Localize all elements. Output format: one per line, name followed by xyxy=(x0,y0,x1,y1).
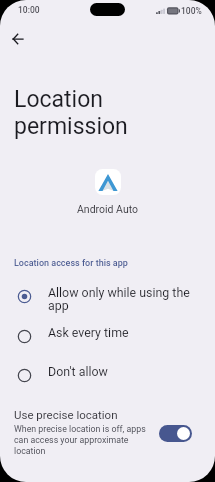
button[interactable]: Allow only while using the app xyxy=(0,284,215,322)
button[interactable]: Ask every time xyxy=(0,324,215,352)
staticText: Android Auto xyxy=(77,203,138,215)
staticText: 10:00 xyxy=(18,5,40,15)
button[interactable]: Use precise location toggle xyxy=(159,425,192,442)
staticText: Allow only while using the app xyxy=(48,286,208,312)
staticText: Don't allow xyxy=(48,365,208,378)
staticText: Location permission xyxy=(14,86,128,140)
button[interactable]: Don't allow xyxy=(0,363,215,391)
staticText: 100% xyxy=(181,6,202,16)
button[interactable]: Back xyxy=(5,26,30,51)
staticText: Use precise location xyxy=(14,408,118,422)
staticText: Ask every time xyxy=(48,326,208,339)
staticText: When precise location is off, apps can a… xyxy=(14,424,150,457)
staticText: Location access for this app xyxy=(14,258,128,269)
button[interactable]: Use precise location xyxy=(0,404,215,464)
